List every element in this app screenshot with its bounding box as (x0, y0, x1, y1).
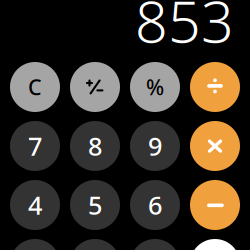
staticText: 6 (148, 188, 162, 222)
staticText: 5 (88, 188, 102, 222)
staticText: 7 (28, 129, 42, 163)
button[interactable]: % (130, 62, 180, 112)
button[interactable]: Multiply (190, 121, 240, 171)
button[interactable]: 8 (70, 121, 120, 171)
button[interactable]: 4 (10, 180, 60, 230)
button[interactable]: 5 (70, 180, 120, 230)
staticText: % (146, 73, 164, 101)
button[interactable]: Divide (190, 62, 240, 112)
staticText: 8 (88, 129, 102, 163)
button[interactable]: 3 (130, 239, 180, 250)
staticText: 9 (148, 129, 162, 163)
button[interactable]: 2 (70, 239, 120, 250)
button[interactable]: C (10, 62, 60, 112)
button[interactable]: 7 (10, 121, 60, 171)
button[interactable]: Toggle sign (70, 62, 120, 112)
button[interactable]: Minus (190, 180, 240, 230)
button[interactable]: Plus (190, 239, 240, 250)
button[interactable]: 1 (10, 239, 60, 250)
button[interactable]: 9 (130, 121, 180, 171)
staticText: 4 (28, 188, 42, 222)
staticText: C (28, 73, 42, 101)
staticText: 853 (135, 0, 234, 58)
button[interactable]: 6 (130, 180, 180, 230)
